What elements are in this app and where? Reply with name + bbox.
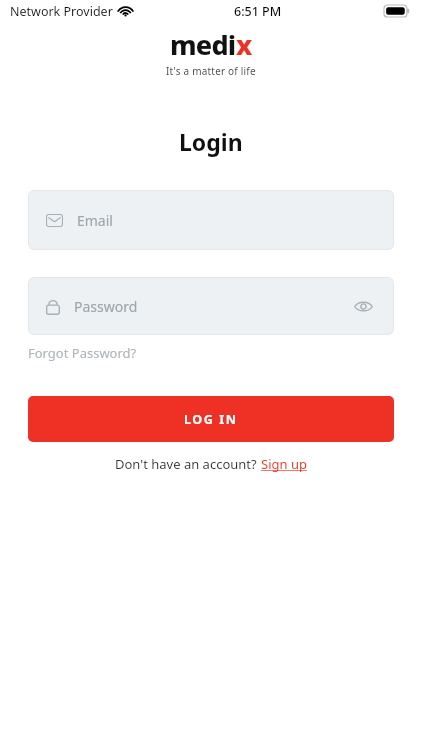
staticText: Email bbox=[77, 211, 113, 230]
staticText: It's a matter of life bbox=[166, 64, 256, 78]
button[interactable]: LOG IN bbox=[28, 396, 394, 442]
staticText: x bbox=[236, 26, 252, 63]
staticText: Forgot Password? bbox=[28, 344, 137, 362]
staticText: Sign up bbox=[261, 455, 307, 473]
staticText: Login bbox=[179, 126, 243, 157]
button[interactable]: Password bbox=[28, 277, 394, 335]
button[interactable]: Email bbox=[28, 190, 394, 250]
button[interactable]: Forgot Password? bbox=[28, 341, 137, 365]
staticText: medi bbox=[170, 26, 236, 63]
staticText: Password bbox=[74, 297, 350, 316]
button[interactable]: Sign up bbox=[261, 455, 307, 473]
staticText: Network Provider bbox=[10, 3, 113, 20]
button[interactable]: Show password bbox=[350, 293, 376, 319]
staticText: LOG IN bbox=[184, 411, 238, 428]
staticText: 6:51 PM bbox=[234, 3, 282, 20]
staticText: Don't have an account? bbox=[115, 455, 261, 473]
